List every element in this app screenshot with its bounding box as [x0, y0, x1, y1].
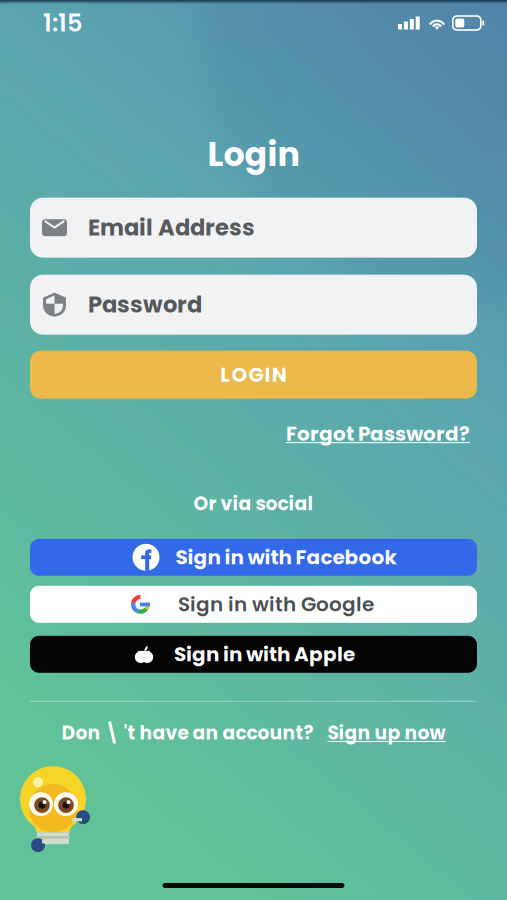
button[interactable]: Email Address [30, 198, 477, 258]
button[interactable]: Sign in with Google [30, 586, 477, 623]
staticText: Sign in with Google [178, 590, 374, 618]
button[interactable]: LOGIN [30, 351, 477, 399]
button[interactable]: Sign in with Facebook [30, 539, 477, 576]
staticText: Forgot Password? [286, 420, 470, 448]
button[interactable]: Sign in with Apple [30, 636, 477, 673]
button[interactable]: Sign up now [327, 720, 445, 746]
staticText: Don \ 't have an account? [61, 720, 313, 746]
staticText: 1:15 [43, 6, 82, 40]
staticText: Email Address [88, 212, 255, 243]
staticText: Sign up now [327, 720, 445, 746]
staticText: Login [207, 131, 299, 178]
staticText: Sign in with Apple [174, 640, 355, 668]
button[interactable]: Password [30, 275, 477, 335]
staticText: Password [88, 289, 202, 320]
button[interactable]: Forgot Password? [286, 420, 470, 448]
staticText: Or via social [193, 491, 313, 517]
staticText: LOGIN [220, 361, 287, 389]
staticText: Sign in with Facebook [175, 543, 396, 571]
